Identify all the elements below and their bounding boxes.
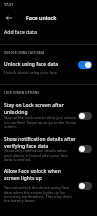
staticText: Stay on Lock screen after unlocking <box>4 102 76 115</box>
button[interactable]: Switch off <box>78 145 92 153</box>
staticText: Show notification details after verifyin… <box>4 136 76 149</box>
staticText: You can unlock the device using face dat… <box>4 185 80 203</box>
button[interactable] <box>0 165 97 207</box>
staticText: 17:21 <box>4 2 34 7</box>
staticText: UNLOCK USING FACE DATA <box>4 51 74 55</box>
staticText: Unlock using face data <box>4 61 76 68</box>
button[interactable] <box>0 26 97 42</box>
button[interactable] <box>0 58 97 80</box>
staticText: Show only notification details when your… <box>4 148 80 162</box>
staticText: LOCK SCREEN OPTIONS <box>4 91 74 95</box>
staticText: Stay on the Lock screen after you unlock… <box>4 115 80 129</box>
button[interactable] <box>0 133 97 165</box>
button[interactable]: Switch off <box>78 182 92 190</box>
staticText: Add face data <box>4 29 64 36</box>
button[interactable]: Switch off <box>78 112 92 120</box>
staticText: Unlock device using your face <box>4 70 78 75</box>
staticText: Allow Face unlock when screen lights up <box>4 168 76 181</box>
button[interactable]: Switch on <box>78 61 92 69</box>
button[interactable] <box>0 99 97 132</box>
button[interactable]: Back <box>2 11 15 24</box>
staticText: Face unlock <box>26 14 76 21</box>
